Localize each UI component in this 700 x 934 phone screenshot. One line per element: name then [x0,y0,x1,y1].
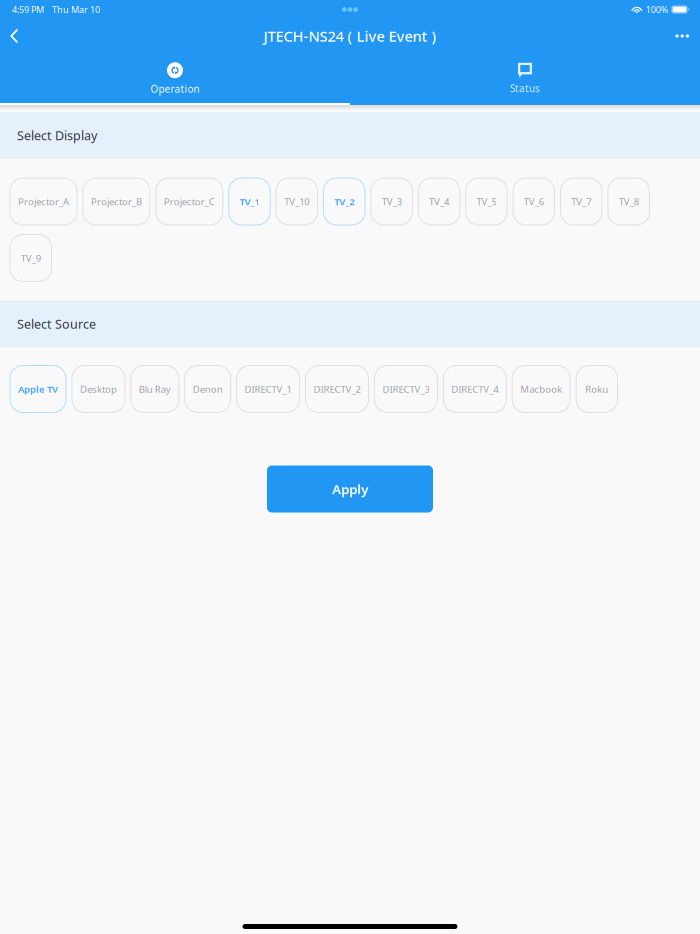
button[interactable]: DIRECTV_1 [237,365,300,412]
staticText: TV_10 [284,195,309,208]
button[interactable]: Apple TV [10,365,66,412]
button[interactable]: DIRECTV_3 [374,365,437,412]
button[interactable]: Status [350,53,700,105]
staticText: DIRECTV_3 [382,382,429,396]
button[interactable]: Back [0,19,31,53]
button[interactable]: TV_8 [608,178,649,225]
button[interactable]: Operation [0,53,350,105]
button[interactable]: TV_1 [229,178,270,225]
button[interactable]: TV_3 [371,178,412,225]
staticText: Operation [150,82,199,96]
button[interactable]: Apply [267,465,433,512]
staticText: Select Source [17,315,96,333]
staticText: JTECH-NS24 ( Live Event ) [263,26,436,46]
button[interactable]: TV_7 [560,178,602,225]
staticText: 4:59 PM [12,3,44,16]
button[interactable]: TV_6 [513,178,555,225]
staticText: Blu Ray [139,382,171,396]
button[interactable]: Desktop [72,365,125,412]
staticText: TV_5 [476,195,496,208]
button[interactable]: Blu Ray [131,365,179,412]
staticText: 100% [646,3,669,16]
staticText: DIRECTV_4 [451,382,498,396]
button[interactable]: Projector_A [10,178,77,225]
staticText: Roku [585,382,608,396]
button[interactable]: DIRECTV_4 [443,365,506,412]
button[interactable]: Projector_C [156,178,223,225]
button[interactable]: TV_9 [10,234,51,281]
staticText: Select Display [17,127,97,144]
staticText: TV_2 [334,195,354,208]
button[interactable]: TV_5 [466,178,507,225]
button[interactable]: Projector_B [83,178,150,225]
staticText: Apple TV [18,382,58,396]
button[interactable]: More options [663,19,700,53]
button[interactable]: Macbook [512,365,570,412]
button[interactable]: Denon [185,365,231,412]
staticText: TV_3 [382,195,402,208]
button[interactable]: DIRECTV_2 [305,365,368,412]
staticText: Apply [332,480,368,498]
staticText: TV_1 [239,195,259,208]
button[interactable]: Roku [576,365,618,412]
staticText: Denon [193,382,223,396]
staticText: TV_8 [619,195,639,208]
staticText: Macbook [520,382,562,396]
staticText: Status [510,82,540,95]
button[interactable]: TV_10 [276,178,318,225]
staticText: Desktop [80,382,117,396]
button[interactable]: TV_4 [418,178,460,225]
staticText: DIRECTV_1 [245,382,292,396]
staticText: TV_9 [21,251,41,265]
button[interactable]: TV_2 [323,178,365,225]
staticText: Projector_A [18,195,69,208]
staticText: DIRECTV_2 [313,382,360,396]
staticText: Projector_B [91,195,142,208]
staticText: TV_7 [571,195,591,208]
staticText: Thu Mar 10 [52,3,100,16]
staticText: Projector_C [164,195,215,208]
staticText: TV_6 [524,195,544,208]
staticText: TV_4 [429,195,449,208]
